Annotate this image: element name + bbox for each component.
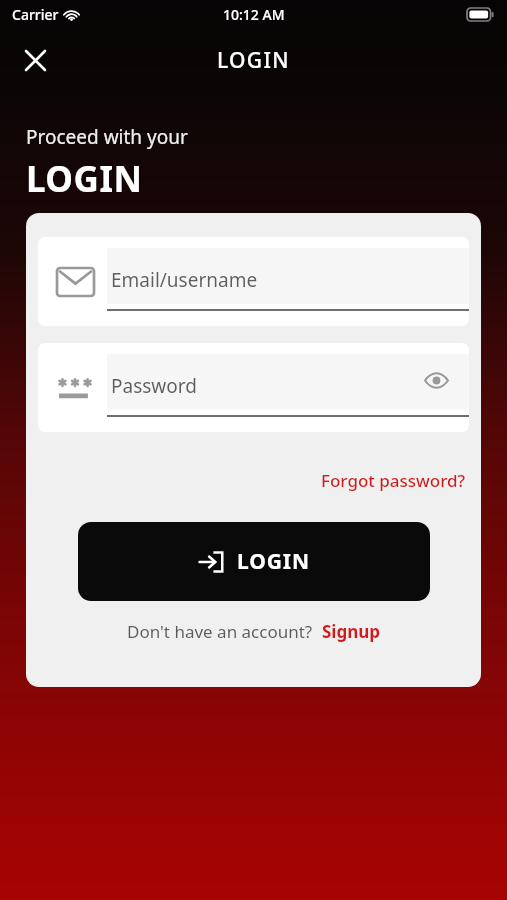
staticText: Email/username [111, 267, 258, 293]
button[interactable]: Don't have an account? [123, 617, 385, 646]
staticText: Signup [322, 620, 381, 643]
button[interactable]: Email/username [38, 237, 469, 326]
staticText: Forgot password? [321, 469, 466, 492]
staticText: LOGIN [237, 547, 310, 576]
staticText: Don't have an account? [127, 620, 313, 643]
button[interactable]: LOGIN [78, 522, 430, 601]
staticText: Password [111, 373, 197, 399]
staticText: LOGIN [217, 46, 290, 75]
staticText: LOGIN [26, 155, 143, 203]
staticText: Proceed with your [26, 124, 188, 150]
button[interactable]: Close [13, 38, 57, 82]
button[interactable]: Password [38, 343, 469, 432]
staticText: 10:12 AM [223, 5, 285, 24]
button[interactable]: Forgot password? [317, 465, 470, 496]
button[interactable]: Show password [417, 361, 455, 399]
staticText: Carrier [12, 5, 59, 24]
